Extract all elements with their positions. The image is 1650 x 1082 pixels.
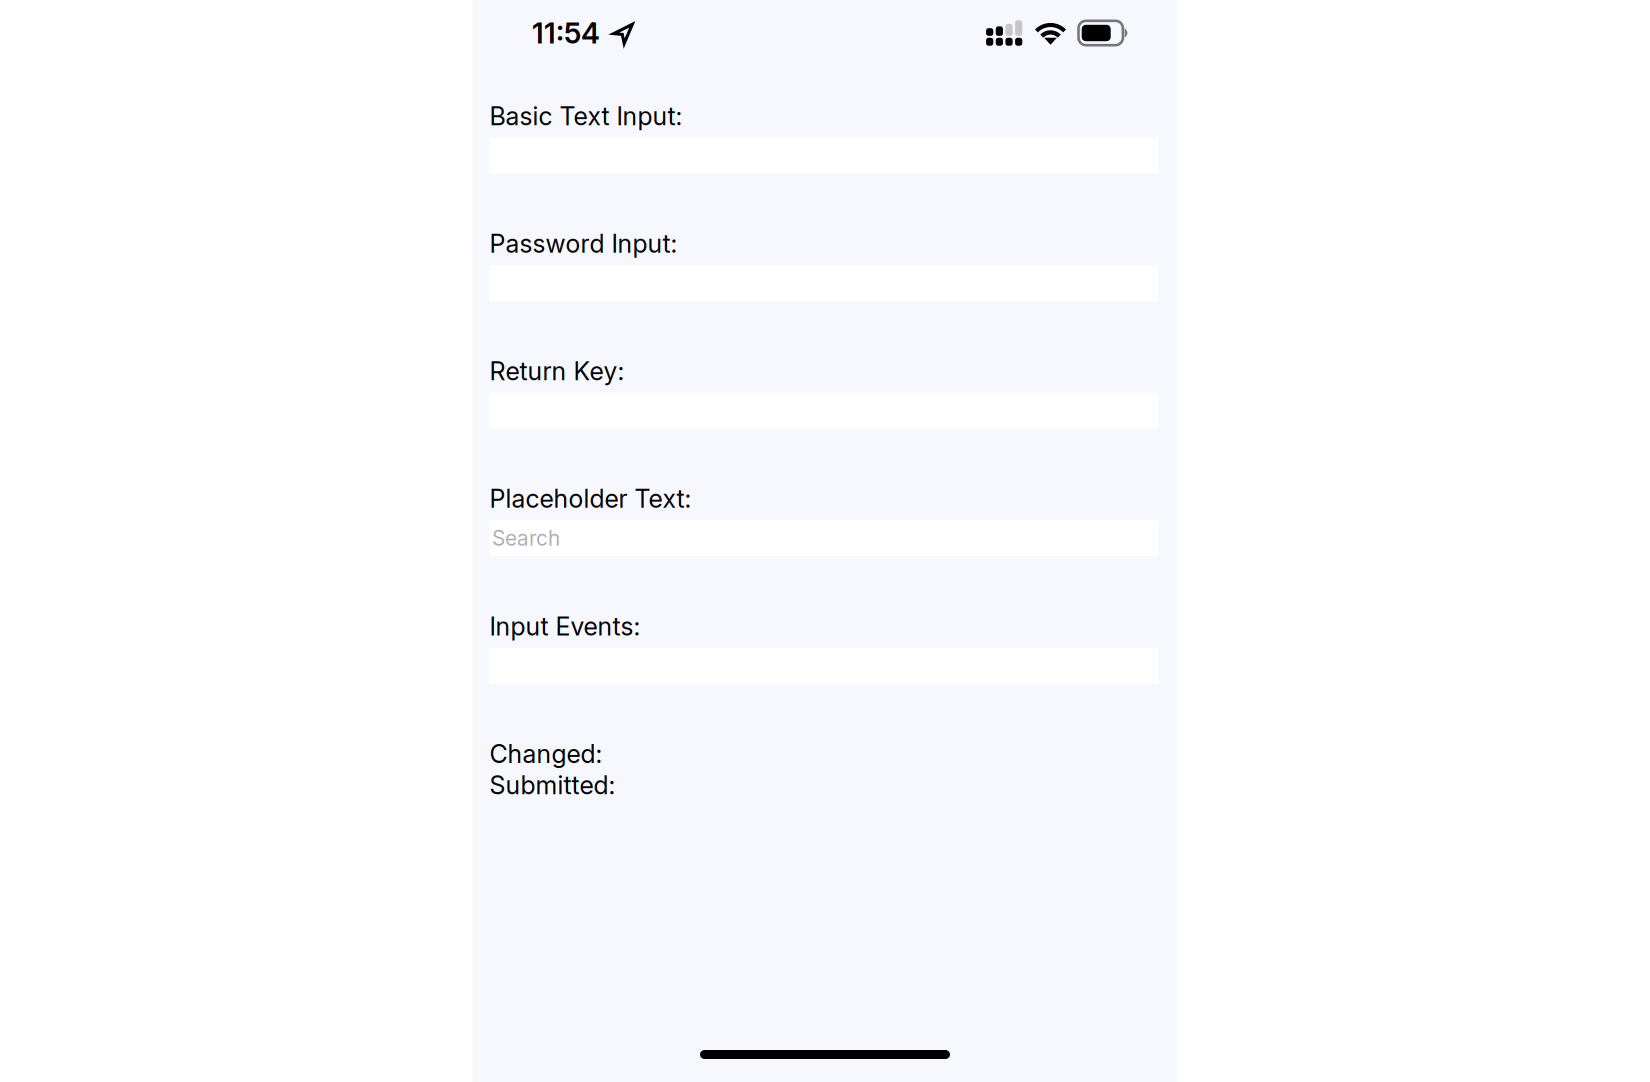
staticText: Submitted: — [489, 770, 615, 800]
staticText: Search — [492, 525, 560, 551]
staticText: Placeholder Text: — [489, 484, 691, 514]
staticText: 11:54 — [532, 16, 600, 50]
staticText: Changed: — [489, 739, 602, 769]
staticText: Input Events: — [489, 611, 640, 641]
button[interactable]: Search — [489, 520, 1158, 556]
staticText: Basic Text Input: — [489, 101, 682, 131]
staticText: Return Key: — [489, 356, 624, 386]
staticText: Password Input: — [489, 228, 677, 259]
